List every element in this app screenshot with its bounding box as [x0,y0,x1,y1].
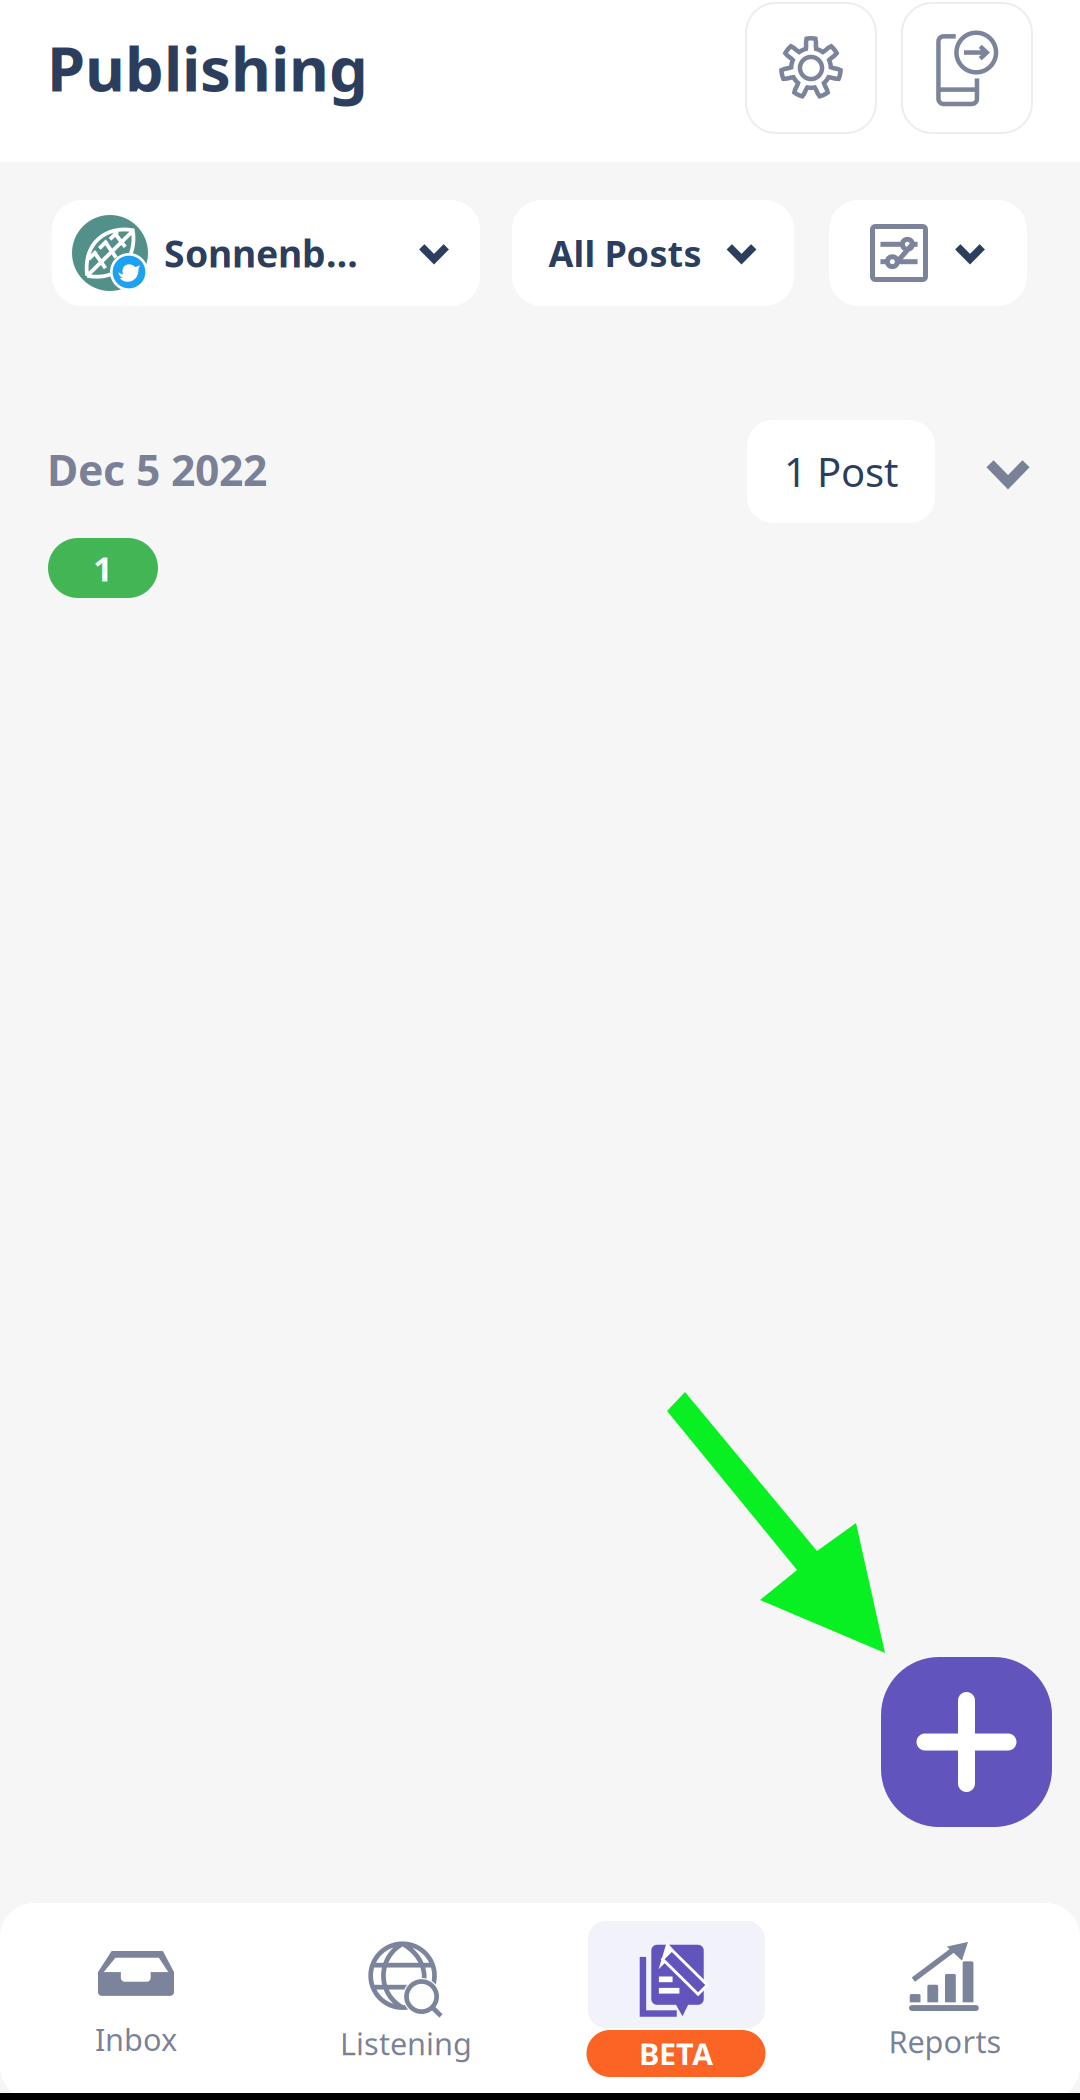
button[interactable]: Compose new post [881,1657,1052,1827]
staticText: Inbox [95,2019,177,2059]
button[interactable]: Publish to device [902,3,1032,133]
button[interactable]: Filters [829,200,1027,306]
staticText: Sonnenb… [164,228,358,278]
button[interactable]: BETA [551,1903,801,2078]
staticText: Listening [340,2023,472,2064]
staticText: BETA [639,2033,713,2074]
button[interactable]: Reports [820,1903,1070,2063]
staticText: Publishing [47,27,368,108]
button[interactable]: 1 Post [747,420,935,523]
button[interactable]: All Posts [512,200,794,306]
staticText: Reports [888,2021,1001,2062]
staticText: 1 Post [784,445,898,498]
button[interactable]: Settings [746,3,876,133]
staticText: All Posts [548,229,701,277]
button[interactable]: Inbox [11,1903,261,2063]
button[interactable]: Listening [281,1903,531,2063]
staticText: Dec 5 2022 [47,441,267,498]
staticText: 1 [93,545,113,591]
button[interactable]: Sonnenb… [52,200,480,306]
button[interactable]: Collapse Dec 5 2022 [963,428,1053,518]
